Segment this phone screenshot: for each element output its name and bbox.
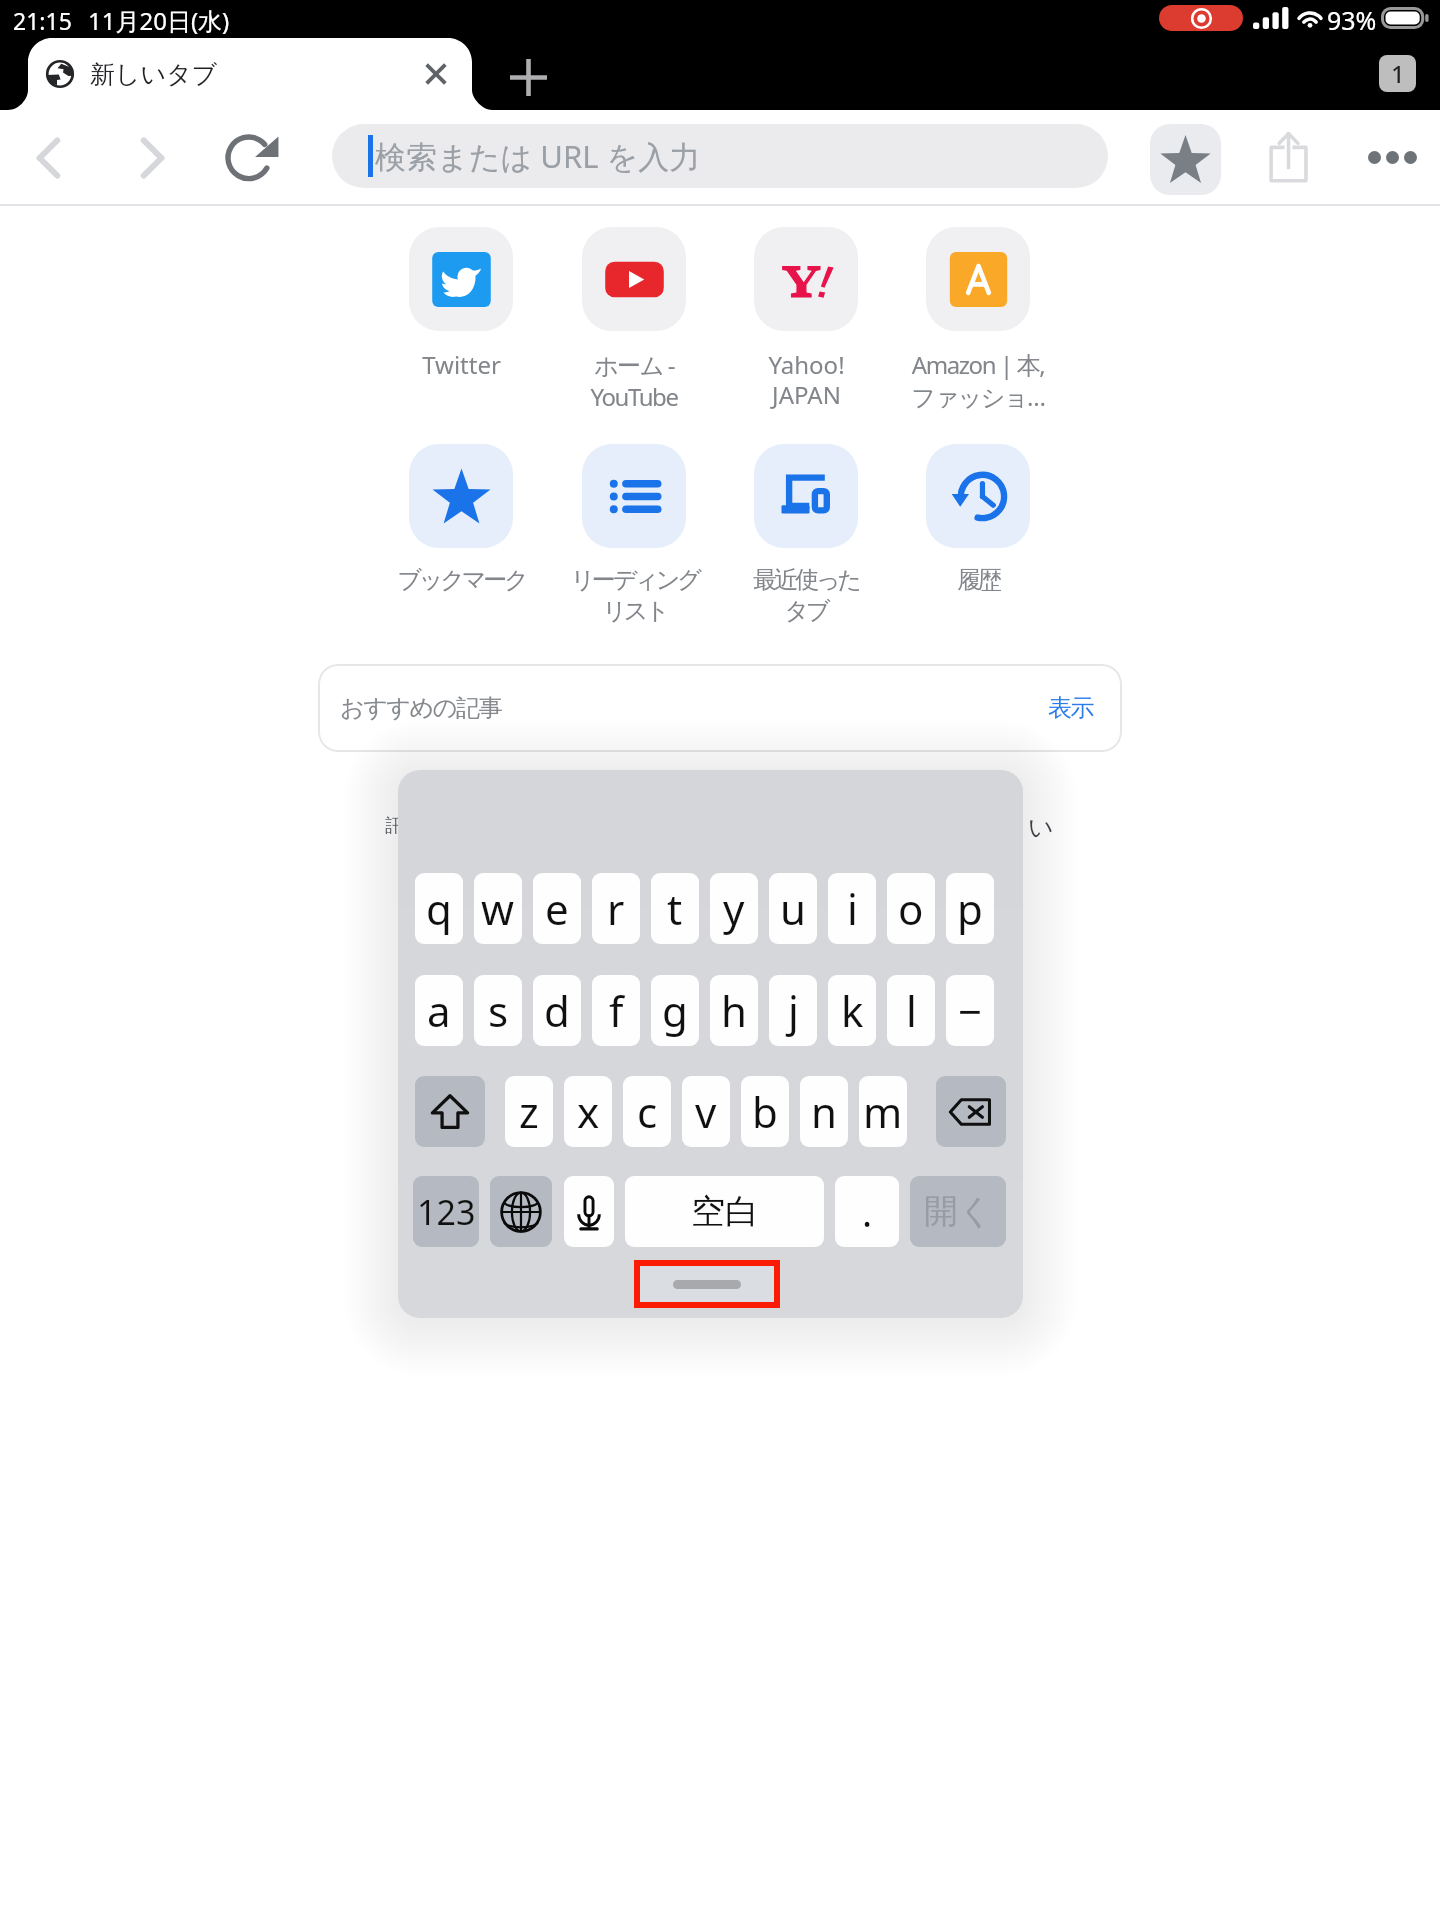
staticText: Amazon | 本, ファッショ…: [911, 348, 1045, 413]
staticText: r: [607, 880, 625, 937]
button[interactable]: b: [741, 1076, 789, 1147]
staticText: 空白: [691, 1190, 759, 1233]
button[interactable]: おすすめの記事: [318, 664, 1122, 752]
button[interactable]: ブックマーク: [361, 444, 561, 595]
staticText: l: [906, 982, 917, 1039]
button[interactable]: z: [505, 1076, 553, 1147]
button[interactable]: q: [415, 873, 463, 944]
staticText: w: [481, 880, 515, 937]
button[interactable]: Reload: [216, 119, 292, 195]
other: Close tab: [426, 64, 446, 84]
button[interactable]: Back: [12, 120, 88, 196]
staticText: a: [427, 982, 451, 1039]
staticText: 表示: [1048, 693, 1094, 723]
button[interactable]: Bookmark: [1150, 124, 1221, 195]
staticText: j: [788, 982, 799, 1039]
staticText: f: [609, 982, 624, 1039]
button[interactable]: v: [682, 1076, 730, 1147]
button[interactable]: g: [651, 975, 699, 1046]
staticText: 1: [1391, 57, 1405, 90]
staticText: −: [958, 982, 983, 1039]
button[interactable]: x: [564, 1076, 612, 1147]
button[interactable]: 123: [413, 1176, 479, 1247]
button[interactable]: Show open tabs: [1379, 55, 1416, 92]
staticText: p: [957, 880, 983, 937]
staticText: z: [519, 1083, 539, 1140]
staticText: 11月20日(水): [88, 4, 230, 37]
button[interactable]: 新しいタブ: [28, 38, 472, 110]
staticText: t: [667, 880, 683, 937]
button[interactable]: 開く: [910, 1176, 1006, 1247]
staticText: g: [662, 982, 688, 1039]
staticText: リーディング リスト: [570, 565, 699, 626]
button[interactable]: k: [828, 975, 876, 1046]
button[interactable]: Amazon | 本, ファッショ…: [878, 227, 1078, 413]
button[interactable]: s: [474, 975, 522, 1046]
staticText: .: [862, 1186, 873, 1238]
staticText: ホーム - YouTube: [590, 348, 678, 413]
staticText: k: [841, 982, 864, 1039]
staticText: h: [721, 982, 747, 1039]
button[interactable]: i: [828, 873, 876, 944]
button[interactable]: 空白: [625, 1176, 824, 1247]
staticText: b: [752, 1083, 778, 1140]
staticText: い: [1028, 812, 1054, 843]
staticText: 検索または URL を入力: [375, 135, 701, 177]
button[interactable]: Twitter: [361, 227, 561, 381]
button[interactable]: r: [592, 873, 640, 944]
staticText: x: [577, 1083, 600, 1140]
button[interactable]: l: [887, 975, 935, 1046]
staticText: u: [780, 880, 806, 937]
button[interactable]: 履歴: [878, 444, 1078, 595]
button[interactable]: o: [887, 873, 935, 944]
button[interactable]: w: [474, 873, 522, 944]
button[interactable]: f: [592, 975, 640, 1046]
button[interactable]: −: [946, 975, 994, 1046]
staticText: v: [695, 1083, 717, 1140]
staticText: d: [544, 982, 570, 1039]
button[interactable]: Voice input: [564, 1176, 614, 1247]
staticText: e: [545, 880, 569, 937]
staticText: 履歴: [957, 565, 999, 595]
button[interactable]: 最近使った タブ: [706, 444, 906, 626]
staticText: y: [723, 880, 745, 937]
button[interactable]: Share: [1250, 119, 1326, 195]
button[interactable]: New tab: [494, 43, 562, 111]
button[interactable]: ホーム - YouTube: [534, 227, 734, 413]
button[interactable]: a: [415, 975, 463, 1046]
button[interactable]: m: [859, 1076, 907, 1147]
staticText: q: [426, 880, 452, 937]
staticText: 21:15: [13, 5, 72, 36]
button[interactable]: Forward: [113, 120, 189, 196]
staticText: 123: [417, 1189, 476, 1235]
button[interactable]: More options: [1354, 119, 1430, 195]
button[interactable]: h: [710, 975, 758, 1046]
button[interactable]: Backspace: [936, 1076, 1006, 1147]
button[interactable]: u: [769, 873, 817, 944]
button[interactable]: Switch keyboard language: [490, 1176, 552, 1247]
staticText: 93%: [1327, 3, 1377, 31]
staticText: i: [847, 880, 858, 937]
button[interactable]: e: [533, 873, 581, 944]
button[interactable]: リーディング リスト: [534, 444, 734, 626]
button[interactable]: y: [710, 873, 758, 944]
staticText: o: [898, 880, 924, 937]
button[interactable]: p: [946, 873, 994, 944]
button[interactable]: Shift: [415, 1076, 485, 1147]
button[interactable]: d: [533, 975, 581, 1046]
staticText: s: [488, 982, 509, 1039]
staticText: m: [863, 1083, 903, 1140]
staticText: n: [811, 1083, 837, 1140]
button[interactable]: .: [835, 1176, 899, 1247]
button[interactable]: t: [651, 873, 699, 944]
staticText: 訊: [385, 814, 404, 838]
staticText: 最近使った タブ: [753, 565, 859, 626]
button[interactable]: j: [769, 975, 817, 1046]
button[interactable]: n: [800, 1076, 848, 1147]
button[interactable]: 検索または URL を入力: [332, 124, 1108, 188]
staticText: Twitter: [422, 348, 501, 381]
staticText: おすすめの記事: [340, 693, 502, 723]
staticText: c: [637, 1083, 658, 1140]
button[interactable]: Yahoo! JAPAN: [706, 227, 906, 411]
button[interactable]: c: [623, 1076, 671, 1147]
